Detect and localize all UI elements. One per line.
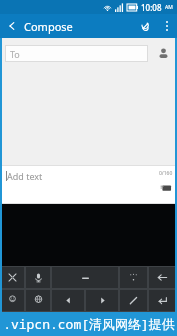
button[interactable]: Enter — [148, 289, 177, 312]
button[interactable]: Right — [85, 289, 119, 312]
button[interactable]: Handwriting — [119, 289, 148, 312]
button[interactable]: Attach — [133, 14, 157, 38]
button[interactable]: Punctuation — [119, 266, 148, 289]
button[interactable]: Backspace — [148, 266, 177, 289]
staticText: AM — [165, 4, 173, 11]
staticText: To — [10, 48, 20, 60]
button[interactable]: Pick contact — [154, 44, 172, 62]
button[interactable]: resize — [0, 266, 25, 289]
button[interactable]: Add text — [6, 170, 158, 182]
button[interactable]: Symbols — [0, 289, 25, 312]
button[interactable]: More options — [157, 14, 177, 38]
button[interactable]: Language — [25, 289, 51, 312]
button[interactable]: Left — [51, 289, 85, 312]
button[interactable]: Send — [158, 180, 173, 195]
staticText: Add text — [7, 170, 43, 182]
button[interactable]: Space — [51, 266, 119, 289]
staticText: 10:08 — [141, 2, 162, 13]
button[interactable]: To — [5, 45, 148, 62]
staticText: 0/160 — [159, 170, 173, 177]
button[interactable]: Back — [0, 14, 24, 38]
staticText: Compose — [24, 19, 73, 34]
staticText: .vipcn.com[清风网络]提供 — [3, 315, 175, 333]
button[interactable]: Voice input — [25, 266, 51, 289]
